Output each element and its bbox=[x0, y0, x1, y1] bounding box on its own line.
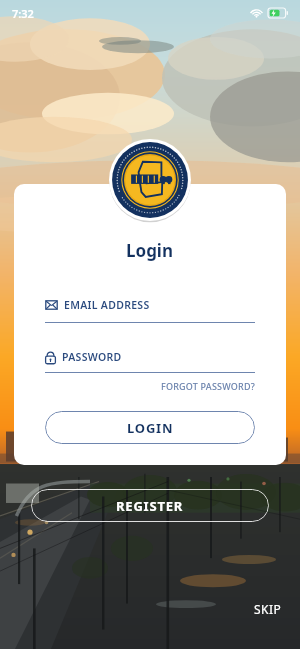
staticText: SKIP bbox=[254, 601, 282, 617]
button[interactable]: LOGIN bbox=[45, 411, 255, 444]
button[interactable]: PASSWORD bbox=[45, 350, 255, 373]
staticText: EMAIL ADDRESS bbox=[64, 298, 150, 312]
button[interactable]: REGISTER bbox=[31, 489, 269, 522]
staticText: PASSWORD bbox=[62, 350, 122, 364]
staticText: REGISTER bbox=[116, 497, 184, 515]
staticText: Login bbox=[126, 239, 174, 262]
staticText: 7:32 bbox=[12, 6, 34, 21]
staticText: LOGIN bbox=[127, 419, 174, 437]
button[interactable]: EMAIL ADDRESS bbox=[45, 298, 255, 323]
staticText: FORGOT PASSWORD? bbox=[161, 380, 255, 392]
button[interactable]: SKIP bbox=[248, 595, 288, 623]
button[interactable]: FORGOT PASSWORD? bbox=[161, 378, 255, 394]
